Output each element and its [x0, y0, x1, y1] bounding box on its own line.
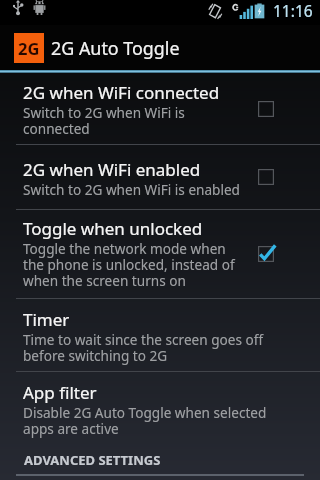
- staticText: 2G when WiFi connected: [23, 83, 220, 104]
- staticText: Switch to 2G when WiFi is enabled: [23, 183, 240, 199]
- staticText: Toggle when unlocked: [23, 219, 203, 240]
- staticText: App filter: [23, 383, 97, 404]
- button[interactable]: Toggle when unlocked: [0, 210, 320, 298]
- button[interactable]: 2G: [0, 25, 320, 70]
- button[interactable]: 2G when WiFi connected: [0, 73, 320, 144]
- staticText: Timer: [23, 310, 70, 331]
- staticText: 2G Auto Toggle: [51, 36, 180, 60]
- staticText: 2G: [18, 37, 40, 59]
- staticText: ADVANCED SETTINGS: [24, 453, 161, 468]
- button[interactable]: App filter: [0, 372, 320, 443]
- button[interactable]: Timer: [0, 299, 320, 371]
- staticText: 2G when WiFi enabled: [23, 160, 201, 181]
- staticText: Switch to 2G when WiFi is connected: [23, 106, 185, 138]
- staticText: Toggle the network mode when the phone i…: [23, 242, 235, 290]
- button[interactable]: 2G when WiFi enabled: [0, 145, 320, 209]
- staticText: 11:16: [273, 0, 313, 21]
- staticText: Time to wait since the screen goes off b…: [23, 333, 264, 365]
- staticText: Disable 2G Auto Toggle when selected app…: [23, 406, 267, 438]
